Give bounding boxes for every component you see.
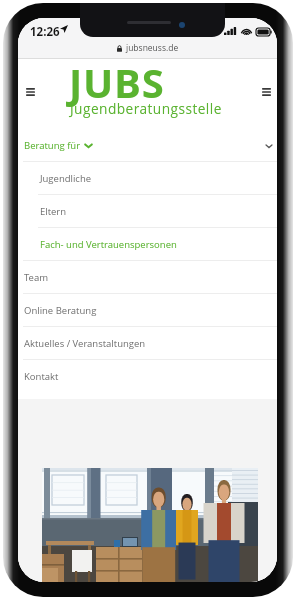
staticText: Beratung für bbox=[24, 139, 81, 152]
button[interactable]: Jugendliche bbox=[18, 162, 277, 195]
staticText: Team bbox=[24, 271, 49, 284]
staticText: 12:26 bbox=[30, 24, 60, 40]
staticText: Eltern bbox=[40, 205, 67, 218]
staticText: Jugendliche bbox=[40, 172, 92, 185]
button[interactable]: Kontakt bbox=[18, 360, 277, 393]
staticText: Aktuelles / Veranstaltungen bbox=[24, 337, 146, 350]
staticText: Kontakt bbox=[24, 370, 59, 383]
staticText: jubsneuss.de bbox=[126, 42, 179, 54]
button[interactable]: Open navigation bbox=[256, 76, 276, 108]
button[interactable]: Team bbox=[18, 261, 277, 294]
button[interactable]: Menu bbox=[20, 76, 40, 108]
button[interactable]: Beratung für bbox=[18, 129, 277, 162]
staticText: JUBS bbox=[69, 55, 165, 109]
staticText: Fach- und Vertrauenspersonen bbox=[40, 238, 177, 251]
button[interactable]: Fach- und Vertrauenspersonen bbox=[18, 228, 277, 261]
staticText: Jugendberatungsstelle bbox=[70, 99, 222, 118]
staticText: Online Beratung bbox=[24, 304, 97, 317]
button[interactable]: Online Beratung bbox=[18, 294, 277, 327]
button[interactable]: Aktuelles / Veranstaltungen bbox=[18, 327, 277, 360]
button[interactable]: Eltern bbox=[18, 195, 277, 228]
